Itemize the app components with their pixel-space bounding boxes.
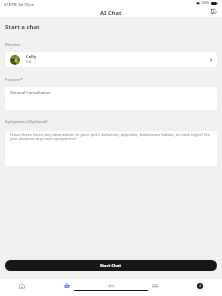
- button[interactable]: Home: [0, 279, 44, 293]
- button[interactable]: General Consultation: [5, 87, 217, 110]
- staticText: Symptoms (Optional): [5, 118, 48, 124]
- staticText: 100%: [201, 1, 210, 5]
- button[interactable]: AI Chat: [45, 279, 89, 293]
- button[interactable]: Chat history: [209, 7, 219, 17]
- button[interactable]: Have there been any alterations in your …: [5, 131, 217, 166]
- staticText: Start Chat: [100, 263, 122, 269]
- staticText: Purpose*: [5, 77, 23, 82]
- staticText: 4:18 PM Sat 10 Jun: [4, 2, 34, 6]
- button[interactable]: Calfy: [5, 52, 217, 67]
- staticText: Member: [5, 42, 21, 47]
- staticText: General Consultation: [10, 90, 51, 96]
- staticText: Calfy: [26, 54, 36, 59]
- staticText: Start a chat: [5, 23, 40, 31]
- staticText: Have there been any alterations in your …: [10, 131, 214, 142]
- button[interactable]: Start Chat: [5, 260, 217, 271]
- button[interactable]: Video call: [89, 279, 133, 293]
- button[interactable]: Profile: [178, 279, 222, 293]
- staticText: AI Chat: [100, 9, 122, 17]
- button[interactable]: Community: [133, 279, 177, 293]
- staticText: Cat: [26, 59, 32, 64]
